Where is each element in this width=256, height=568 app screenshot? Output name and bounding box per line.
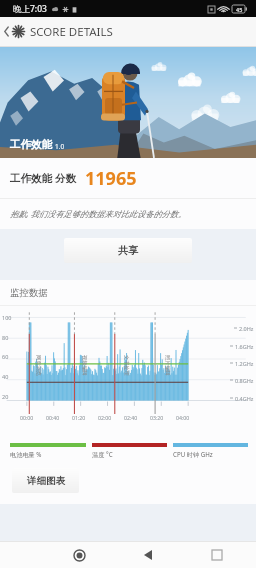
button[interactable]: 共享 xyxy=(64,238,192,263)
staticText: 工作效能 xyxy=(10,138,52,151)
staticText: 1.6GHz xyxy=(235,343,254,350)
staticText: 视频编辑 xyxy=(81,355,88,376)
staticText: 温度 °C xyxy=(92,450,113,458)
staticText: 100 xyxy=(2,314,12,321)
staticText: SCORE DETAILS xyxy=(30,24,113,40)
staticText: CPU 时钟 GHz xyxy=(173,450,213,458)
staticText: 工作效能 xyxy=(10,172,52,185)
staticText: 文书处理 xyxy=(123,355,130,376)
staticText: 03:20 xyxy=(150,414,164,421)
staticText: 00:40 xyxy=(46,414,60,421)
staticText: 04:00 xyxy=(176,414,190,421)
staticText: 11965 xyxy=(85,166,137,191)
staticText: 2.0Hz xyxy=(239,325,254,332)
staticText: 1.2GHz xyxy=(235,360,254,367)
staticText: 1.0 xyxy=(55,142,65,151)
staticText: 40 xyxy=(2,373,9,380)
staticText: 20 xyxy=(2,393,9,400)
button[interactable]: 详细图表 xyxy=(12,468,79,493)
staticText: 0.4GHz xyxy=(235,395,254,402)
staticText: 60 xyxy=(2,353,9,360)
staticText: 80 xyxy=(2,334,9,341)
staticText: 01:20 xyxy=(72,414,86,421)
button[interactable]: Home xyxy=(68,544,90,566)
staticText: 分数 xyxy=(55,172,76,185)
staticText: 00:00 xyxy=(20,414,34,421)
staticText: 45 xyxy=(236,6,243,13)
button[interactable]: Recent apps xyxy=(206,544,228,566)
staticText: 抱歉, 我们没有足够的数据来对比此设备的分数。 xyxy=(10,208,187,219)
button[interactable]: Back xyxy=(0,17,12,46)
staticText: 监控数据 xyxy=(10,287,48,299)
staticText: 网页浏览 xyxy=(35,355,42,376)
staticText: 0.8GHz xyxy=(235,377,254,384)
staticText: 照片编辑 xyxy=(164,355,171,376)
staticText: 电池电量 % xyxy=(10,450,42,458)
staticText: 详细图表 xyxy=(27,475,65,487)
staticText: 共享 xyxy=(118,244,138,257)
staticText: 晚上7:03 xyxy=(13,3,47,15)
staticText: 02:40 xyxy=(124,414,138,421)
staticText: 02:00 xyxy=(98,414,112,421)
button[interactable]: Back xyxy=(137,544,159,566)
